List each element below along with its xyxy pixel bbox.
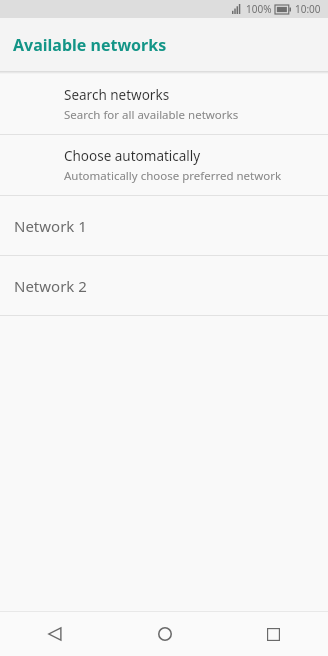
staticText: 100% (246, 2, 272, 16)
button[interactable]: Recent apps (219, 612, 328, 656)
staticText: Network 2 (14, 276, 87, 296)
staticText: Available networks (13, 34, 167, 56)
staticText: Search for all available networks (64, 107, 239, 123)
staticText: Automatically choose preferred network (64, 168, 282, 184)
staticText: 10:00 (295, 2, 321, 16)
button[interactable]: Home (110, 612, 219, 656)
button[interactable]: Back (0, 612, 110, 656)
button[interactable]: Network 2 (0, 256, 328, 315)
staticText: Choose automatically (64, 147, 201, 165)
staticText: Search networks (64, 86, 170, 104)
button[interactable]: Choose automatically (0, 135, 328, 195)
button[interactable]: Network 1 (0, 196, 328, 255)
staticText: Network 1 (14, 216, 87, 236)
button[interactable]: Search networks (0, 74, 328, 134)
